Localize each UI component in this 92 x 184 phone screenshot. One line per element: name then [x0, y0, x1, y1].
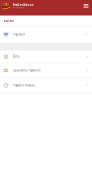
staticText: Pay a Bill	[13, 33, 25, 36]
button[interactable]: Upcoming Payments	[0, 63, 92, 78]
staticText: International Bank	[13, 7, 25, 9]
staticText: FirstCaribbean	[13, 3, 34, 7]
staticText: Upcoming Payments	[13, 69, 40, 72]
button[interactable]: Pay a Bill	[0, 26, 92, 43]
staticText: BILL PAY	[4, 19, 15, 22]
button[interactable]: Bills	[0, 51, 92, 63]
staticText: Payment History	[13, 83, 34, 87]
staticText: Bills	[13, 55, 19, 58]
staticText: CIBC	[3, 3, 10, 7]
button[interactable]: Menu	[81, 2, 92, 10]
button[interactable]: Payment History	[0, 78, 92, 93]
